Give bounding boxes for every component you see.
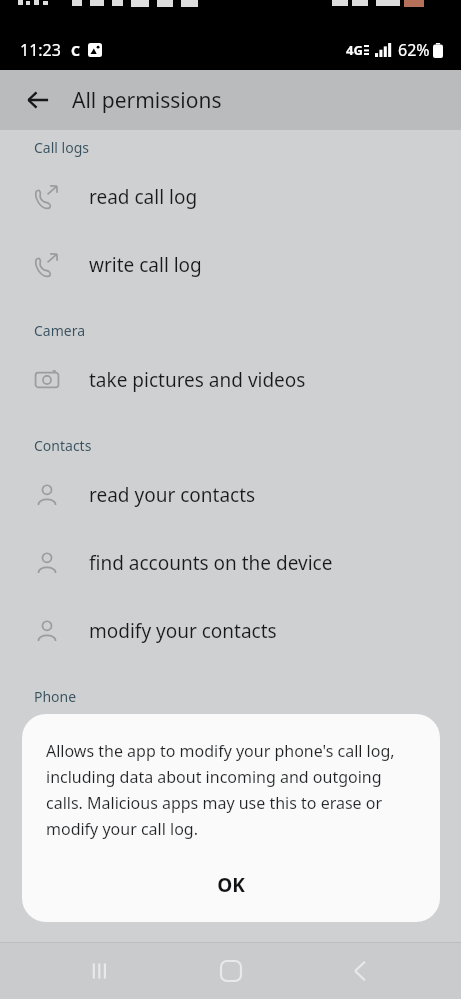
staticText: modify your contacts — [89, 618, 277, 644]
staticText: find accounts on the device — [89, 550, 333, 576]
button[interactable]: read phone status and identity — [0, 712, 461, 780]
staticText: Camera — [34, 321, 86, 340]
button[interactable]: Recent apps — [72, 943, 130, 999]
staticText: read your contacts — [89, 482, 256, 508]
staticText: Call logs — [34, 138, 89, 157]
staticText: OK — [217, 872, 245, 898]
staticText: Phone — [34, 687, 77, 706]
staticText: C — [71, 41, 80, 60]
staticText: 62% — [398, 39, 430, 61]
button[interactable]: read your contacts — [0, 461, 461, 529]
button[interactable]: Home — [202, 943, 260, 999]
button[interactable]: write call log — [0, 231, 461, 299]
staticText: write call log — [89, 252, 202, 278]
button[interactable]: Back — [331, 943, 389, 999]
staticText: 4G — [346, 41, 363, 59]
button[interactable]: take pictures and videos — [0, 346, 461, 414]
staticText: read call log — [89, 184, 198, 210]
button[interactable]: find accounts on the device — [0, 529, 461, 597]
button[interactable]: read call log — [0, 163, 461, 231]
staticText: take pictures and videos — [89, 367, 306, 393]
staticText: 11:23 — [20, 39, 61, 61]
button[interactable]: modify your contacts — [0, 597, 461, 665]
staticText: read phone status and identity — [89, 733, 363, 759]
staticText: All permissions — [72, 86, 222, 115]
staticText: Contacts — [34, 436, 92, 455]
staticText: Allows the app to modify your phone's ca… — [46, 740, 418, 840]
button[interactable]: OK — [176, 862, 286, 908]
button[interactable]: Back — [18, 80, 58, 120]
